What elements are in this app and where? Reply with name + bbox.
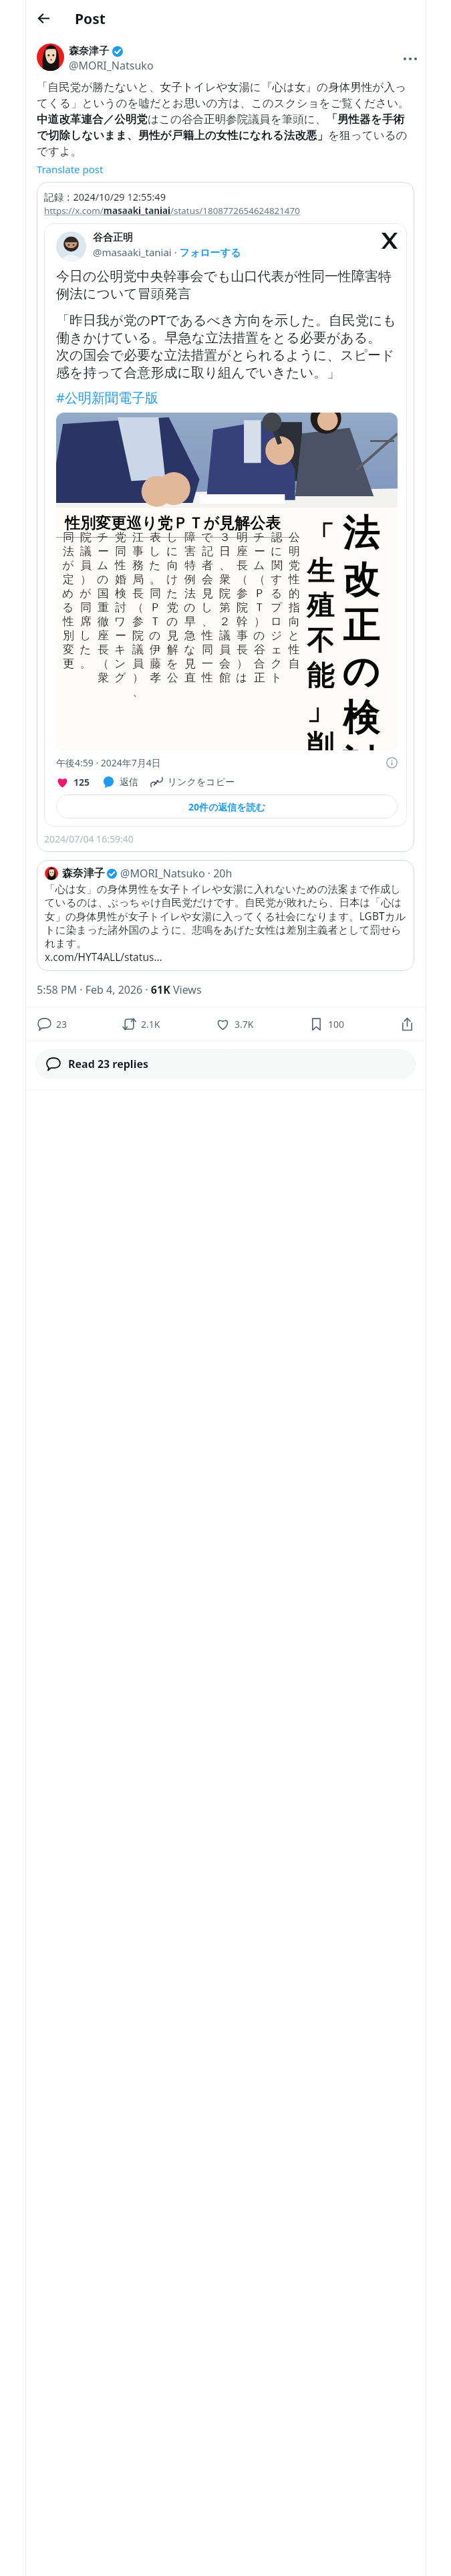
staticText: チ [253,530,265,544]
staticText: 孝 [150,671,161,685]
staticText: @MORI_Natsuko [69,58,154,73]
staticText: 員 [219,643,231,657]
staticText: 害 [184,544,196,558]
button[interactable]: More options [399,47,422,70]
staticText: 記録：2024/10/29 12:55:49 [44,190,166,203]
staticText: 。 [80,657,92,671]
staticText: 森奈津子 [69,45,109,58]
staticText: 見 [167,629,178,643]
staticText: 「 [307,520,334,554]
staticText: （ [132,601,144,615]
staticText: ク [271,657,283,671]
staticText: 院 [80,530,92,544]
staticText: 殖 [307,589,334,624]
staticText: 館 [219,671,231,685]
staticText: 同 [63,530,74,544]
staticText: 認 [271,530,283,544]
staticText: ） [80,572,92,586]
staticText: で [201,530,213,544]
button[interactable]: Repost [120,1015,162,1033]
staticText: ２ [219,615,231,629]
staticText: ロ [271,615,283,629]
staticText: 座 [98,629,109,643]
button[interactable]: 記録：2024/10/29 12:55:49 [37,182,414,852]
staticText: 、 [202,615,213,629]
staticText: 議 [132,643,144,657]
staticText: Ｔ [150,615,161,629]
staticText: 指 [289,601,300,615]
staticText: 、 [132,685,144,699]
staticText: し [166,530,178,544]
staticText: ３ [219,530,231,544]
staticText: キ [114,643,126,657]
staticText: 長 [237,558,248,572]
staticText: す [271,572,283,586]
button[interactable]: Bookmark [307,1015,347,1033]
staticText: の [166,615,178,629]
staticText: 重 [98,601,109,615]
staticText: 徹 [98,615,109,629]
staticText: の [184,601,196,615]
button[interactable]: Like [214,1015,256,1033]
staticText: ワ [114,615,126,629]
staticText: （ [254,572,265,586]
button[interactable]: Read 23 replies [35,1049,416,1079]
staticText: た [166,586,178,601]
staticText: 早 [184,615,196,629]
staticText: 2.1K [141,1018,160,1031]
staticText: 党 [167,601,178,615]
staticText: 性 [115,558,126,572]
staticText: グ [114,671,126,685]
staticText: 性 [63,615,74,629]
staticText: 会 [202,572,213,586]
staticText: が [62,558,74,572]
staticText: 党 [115,530,126,544]
staticText: 議 [80,544,92,558]
staticText: 院 [219,586,231,601]
staticText: @masaaki_taniai · フォローする [93,245,241,259]
button[interactable]: Reply [35,1015,69,1033]
staticText: 的 [289,586,300,601]
staticText: 議 [219,629,231,643]
staticText: Ｐ [254,586,265,601]
staticText: 「心は女」の身体男性を女子トイレや女湯に入れないための法案まで作成しているのは、… [45,883,406,964]
staticText: 明 [237,530,248,544]
staticText: の [97,572,109,586]
staticText: 法 [63,544,74,558]
staticText: 例 [184,572,196,586]
staticText: 事 [237,629,248,643]
staticText: の [342,649,380,695]
button[interactable]: Profile photo [37,43,64,71]
staticText: し [201,601,213,615]
staticText: 婚 [115,572,126,586]
button[interactable]: Share [398,1015,416,1033]
button[interactable]: Back [31,5,56,31]
button[interactable]: Profile photo [45,867,58,880]
staticText: 「昨日我が党のPTであるべき方向を示した。自民党にも働きかけている。早急な立法措… [56,311,398,381]
button[interactable]: Profile photo [37,860,414,971]
staticText: 性別変更巡り党ＰＴが見解公表 [65,514,281,533]
staticText: 局 [132,572,144,586]
button[interactable]: Translate post [37,163,104,176]
staticText: 」 [307,693,334,728]
staticText: 解 [167,643,178,657]
button[interactable]: 20件の返信を読む [56,794,398,819]
staticText: 125 [73,776,90,788]
staticText: た [80,643,92,657]
staticText: 検 [343,695,380,741]
staticText: 午後4:59 · 2024年7月4日 [56,756,161,769]
staticText: が [80,586,92,601]
staticText: 討 [343,741,380,750]
staticText: 表 [150,530,161,544]
staticText: 長 [132,586,144,601]
staticText: 事 [132,544,144,558]
staticText: 参 [237,586,248,601]
staticText: 席 [80,615,92,629]
staticText: 3.7K [235,1018,254,1031]
staticText: 性 [202,629,213,643]
staticText: 明 [289,544,300,558]
staticText: （ [237,572,248,586]
staticText: に [271,544,283,558]
staticText: 20件の返信を読む [188,800,266,813]
staticText: 谷合正明 [93,231,133,244]
